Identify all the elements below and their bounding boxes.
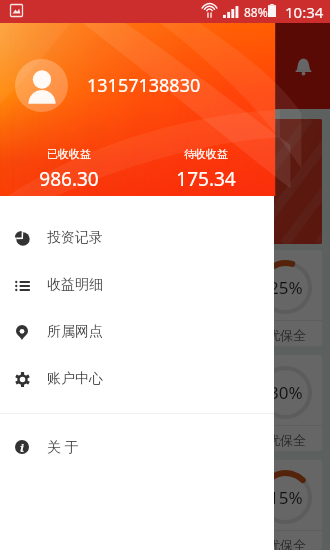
staticText: 986.30: [39, 166, 99, 192]
staticText: 无忧保全: [254, 327, 306, 343]
button[interactable]: 投资记录: [0, 214, 274, 261]
staticText: 15%: [269, 486, 303, 509]
staticText: 175.34: [176, 166, 236, 192]
staticText: 10:34: [285, 2, 324, 22]
button[interactable]: 收益明细: [0, 261, 274, 308]
staticText: 所属网点: [47, 323, 103, 341]
staticText: 账户中心: [47, 370, 103, 388]
button[interactable]: 30%: [8, 355, 322, 451]
button[interactable]: Profile avatar: [15, 59, 68, 112]
staticText: 投资记录: [47, 229, 103, 247]
button[interactable]: 25%: [8, 250, 322, 346]
button[interactable]: i: [0, 423, 274, 470]
button[interactable]: 15%: [8, 460, 322, 550]
staticText: 13157138830: [87, 73, 201, 98]
staticText: 88%: [244, 4, 268, 20]
staticText: 收益明细: [47, 276, 103, 294]
other: Notifications: [294, 57, 313, 76]
staticText: 无忧保全: [254, 432, 306, 448]
staticText: 无忧保全: [254, 537, 306, 550]
button[interactable]: Promotion banner: [8, 119, 322, 244]
button[interactable]: 所属网点: [0, 308, 274, 355]
staticText: 关 于: [47, 437, 79, 456]
staticText: 30%: [269, 381, 303, 404]
button[interactable]: 账户中心: [0, 355, 274, 402]
staticText: i: [20, 440, 24, 454]
staticText: 待收收益: [184, 147, 228, 161]
button[interactable]: Notifications: [286, 49, 320, 83]
staticText: 已收收益: [47, 147, 91, 161]
staticText: 25%: [269, 276, 303, 299]
